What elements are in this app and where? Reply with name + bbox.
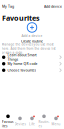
button[interactable]: My home QR code: [0, 60, 64, 67]
staticText: Choose favourites: [7, 68, 36, 72]
button[interactable]: Learn about Smart Things: [0, 54, 64, 60]
staticText: My Tag: [2, 4, 14, 9]
staticText: Life: [29, 122, 35, 126]
staticText: Devices: [14, 122, 25, 126]
button[interactable]: Choose favourites: [0, 67, 64, 73]
staticText: Routines: [38, 120, 49, 128]
staticText: Add device: [44, 4, 62, 9]
staticText: Add a device: [21, 33, 42, 38]
button[interactable]: Routines: [38, 116, 50, 126]
button[interactable]: Life: [26, 116, 38, 126]
staticText: Menu: [51, 122, 60, 126]
button[interactable]: Devices: [14, 116, 26, 126]
button[interactable]: Menu: [50, 116, 62, 126]
staticText: Create routine: [21, 39, 43, 43]
staticText: Learn about Smart Things: [7, 53, 36, 62]
staticText: Favourites: [2, 120, 14, 128]
staticText: Favourites: [2, 13, 40, 23]
staticText: Manage the devices you use most here. Ad…: [1, 42, 55, 55]
staticText: My home QR code: [7, 61, 37, 66]
button[interactable]: Favourites: [2, 116, 14, 126]
